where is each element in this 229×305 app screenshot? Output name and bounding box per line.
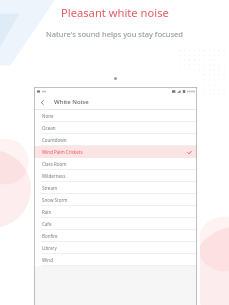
button[interactable]: Cafe [34, 218, 197, 230]
staticText: Snow Storm [42, 197, 68, 203]
staticText: Wind Palm Crickets [42, 149, 83, 155]
button[interactable]: Wind Palm Crickets [34, 146, 197, 158]
button[interactable]: Rain [34, 206, 197, 218]
button[interactable]: Snow Storm [34, 194, 197, 206]
staticText: Wilderness [42, 173, 66, 179]
staticText: Cafe [42, 221, 52, 227]
staticText: Class Room [42, 161, 67, 167]
button[interactable]: Countdown [34, 134, 197, 146]
staticText: Countdown [42, 137, 67, 143]
button[interactable]: Back [37, 97, 48, 108]
staticText: Bonfire [42, 233, 58, 239]
button[interactable]: Class Room [34, 158, 197, 170]
staticText: None [42, 113, 54, 119]
staticText: Pleasant white noise [61, 5, 169, 20]
button[interactable]: Stream [34, 182, 197, 194]
staticText: Stream [42, 185, 58, 191]
staticText: Rain [42, 209, 52, 215]
staticText: White Noise [54, 98, 89, 106]
button[interactable]: Wind [34, 254, 197, 266]
staticText: Wind [42, 257, 53, 263]
button[interactable]: Library [34, 242, 197, 254]
staticText: Library [42, 245, 57, 251]
button[interactable]: Bonfire [34, 230, 197, 242]
button[interactable]: None [34, 110, 197, 122]
staticText: Nature's sound helps you stay focused [46, 29, 183, 39]
staticText: Ocean [42, 125, 56, 131]
button[interactable]: Ocean [34, 122, 197, 134]
button[interactable]: Wilderness [34, 170, 197, 182]
